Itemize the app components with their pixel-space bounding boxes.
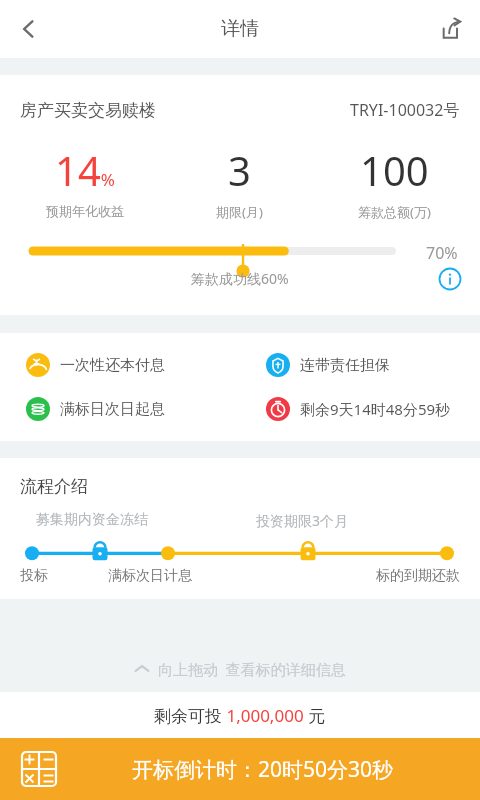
staticText: 100 bbox=[360, 143, 429, 197]
button[interactable]: Info bbox=[438, 267, 462, 291]
staticText: 投标 bbox=[20, 567, 48, 585]
staticText: 流程介绍 bbox=[20, 476, 88, 497]
button[interactable]: Share bbox=[422, 0, 480, 58]
staticText: 向上拖动 查看标的详细信息 bbox=[158, 659, 346, 679]
staticText: 房产买卖交易赎楼 bbox=[20, 100, 156, 121]
staticText: 3 bbox=[228, 143, 251, 197]
staticText: 开标倒计时：20时50分30秒 bbox=[132, 755, 394, 784]
staticText: 满标日次日起息 bbox=[60, 400, 165, 419]
staticText: 募集期内资金冻结 bbox=[36, 511, 148, 529]
button[interactable]: 连带责任担保 bbox=[266, 353, 480, 377]
button[interactable]: 一次性还本付息 bbox=[26, 353, 240, 377]
staticText: 剩余9天14时48分59秒 bbox=[300, 399, 451, 419]
button[interactable]: Back bbox=[0, 0, 58, 58]
staticText: 投资期限3个月 bbox=[256, 511, 349, 530]
staticText: 详情 bbox=[221, 17, 259, 41]
staticText: 剩余可投 1,000,000 元 bbox=[154, 704, 326, 727]
staticText: 连带责任担保 bbox=[300, 356, 390, 375]
staticText: 期限(月) bbox=[216, 203, 263, 221]
staticText: 70% bbox=[426, 242, 458, 264]
staticText: 筹款总额(万) bbox=[358, 203, 431, 221]
staticText: 标的到期还款 bbox=[376, 567, 460, 585]
staticText: 一次性还本付息 bbox=[60, 356, 165, 375]
staticText: 满标次日计息 bbox=[108, 567, 192, 585]
button[interactable]: 向上拖动 查看标的详细信息 bbox=[0, 646, 480, 692]
staticText: 预期年化收益 bbox=[46, 203, 124, 219]
button[interactable]: 满标日次日起息 bbox=[26, 397, 240, 421]
button[interactable]: 剩余9天14时48分59秒 bbox=[266, 397, 480, 421]
staticText: TRYI-100032号 bbox=[350, 99, 460, 121]
staticText: 筹款成功线60% bbox=[191, 269, 289, 288]
staticText: 14% bbox=[55, 143, 115, 197]
button[interactable]: 开标倒计时：20时50分30秒 bbox=[0, 738, 480, 800]
